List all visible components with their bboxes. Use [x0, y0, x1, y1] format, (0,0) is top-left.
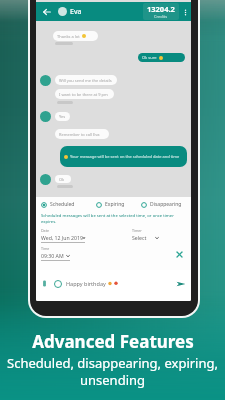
- staticText: Wed, 12 Jun 2019: [41, 234, 83, 241]
- staticText: Will you send me the details: [59, 78, 112, 83]
- button[interactable]: Thanks a lot: [53, 31, 98, 41]
- staticText: Ok: [59, 177, 65, 182]
- staticText: Date: [41, 228, 49, 233]
- button[interactable]: Attach: [39, 278, 50, 289]
- staticText: Thanks a lot: [57, 34, 80, 39]
- staticText: Disappearing: [150, 201, 182, 208]
- staticText: Expiring: [105, 201, 125, 208]
- staticText: Scheduled, disappearing, expiring, unsen…: [7, 354, 218, 389]
- button[interactable]: Select: [132, 234, 159, 241]
- button[interactable]: Scheduled: [41, 201, 75, 208]
- staticText: Time: [41, 246, 50, 251]
- staticText: 13204.2: [147, 4, 175, 14]
- button[interactable]: 09:30 AM: [41, 252, 70, 259]
- staticText: Your message will be sent on the schedul…: [70, 154, 180, 159]
- staticText: 09:30 AM: [41, 252, 64, 259]
- staticText: Yes: [59, 114, 66, 119]
- button[interactable]: Disappearing: [141, 201, 182, 208]
- button[interactable]: 13204.2: [143, 3, 179, 20]
- staticText: Advanced Features: [32, 330, 194, 353]
- button[interactable]: More options: [179, 4, 191, 20]
- button[interactable]: Ok sure: [138, 53, 185, 62]
- button[interactable]: Remember to call Eva: [55, 129, 109, 139]
- staticText: Happy birthday: [66, 280, 106, 287]
- button[interactable]: Send: [174, 277, 187, 290]
- staticText: Scheduled messages will be sent at the s…: [41, 213, 174, 225]
- staticText: I want to be there at 9 pm: [59, 92, 108, 97]
- button[interactable]: Expiring: [96, 201, 125, 208]
- staticText: Credits: [154, 14, 168, 19]
- button[interactable]: Will you send me the details: [55, 75, 117, 85]
- button[interactable]: Wed, 12 Jun 2019: [41, 234, 85, 241]
- button[interactable]: Emoji: [52, 278, 63, 289]
- staticText: Timer: [132, 228, 142, 233]
- staticText: Remember to call Eva: [59, 132, 100, 137]
- button[interactable]: Clear: [173, 248, 185, 260]
- button[interactable]: Ok: [55, 175, 71, 183]
- staticText: Scheduled: [50, 201, 75, 208]
- staticText: Ok sure: [142, 55, 157, 60]
- staticText: Select: [132, 234, 147, 241]
- button[interactable]: Yes: [55, 112, 70, 121]
- button[interactable]: Back: [40, 5, 53, 18]
- staticText: Eva: [70, 7, 82, 17]
- button[interactable]: I want to be there at 9 pm: [55, 89, 114, 99]
- button[interactable]: Your message will be sent on the schedul…: [60, 146, 187, 167]
